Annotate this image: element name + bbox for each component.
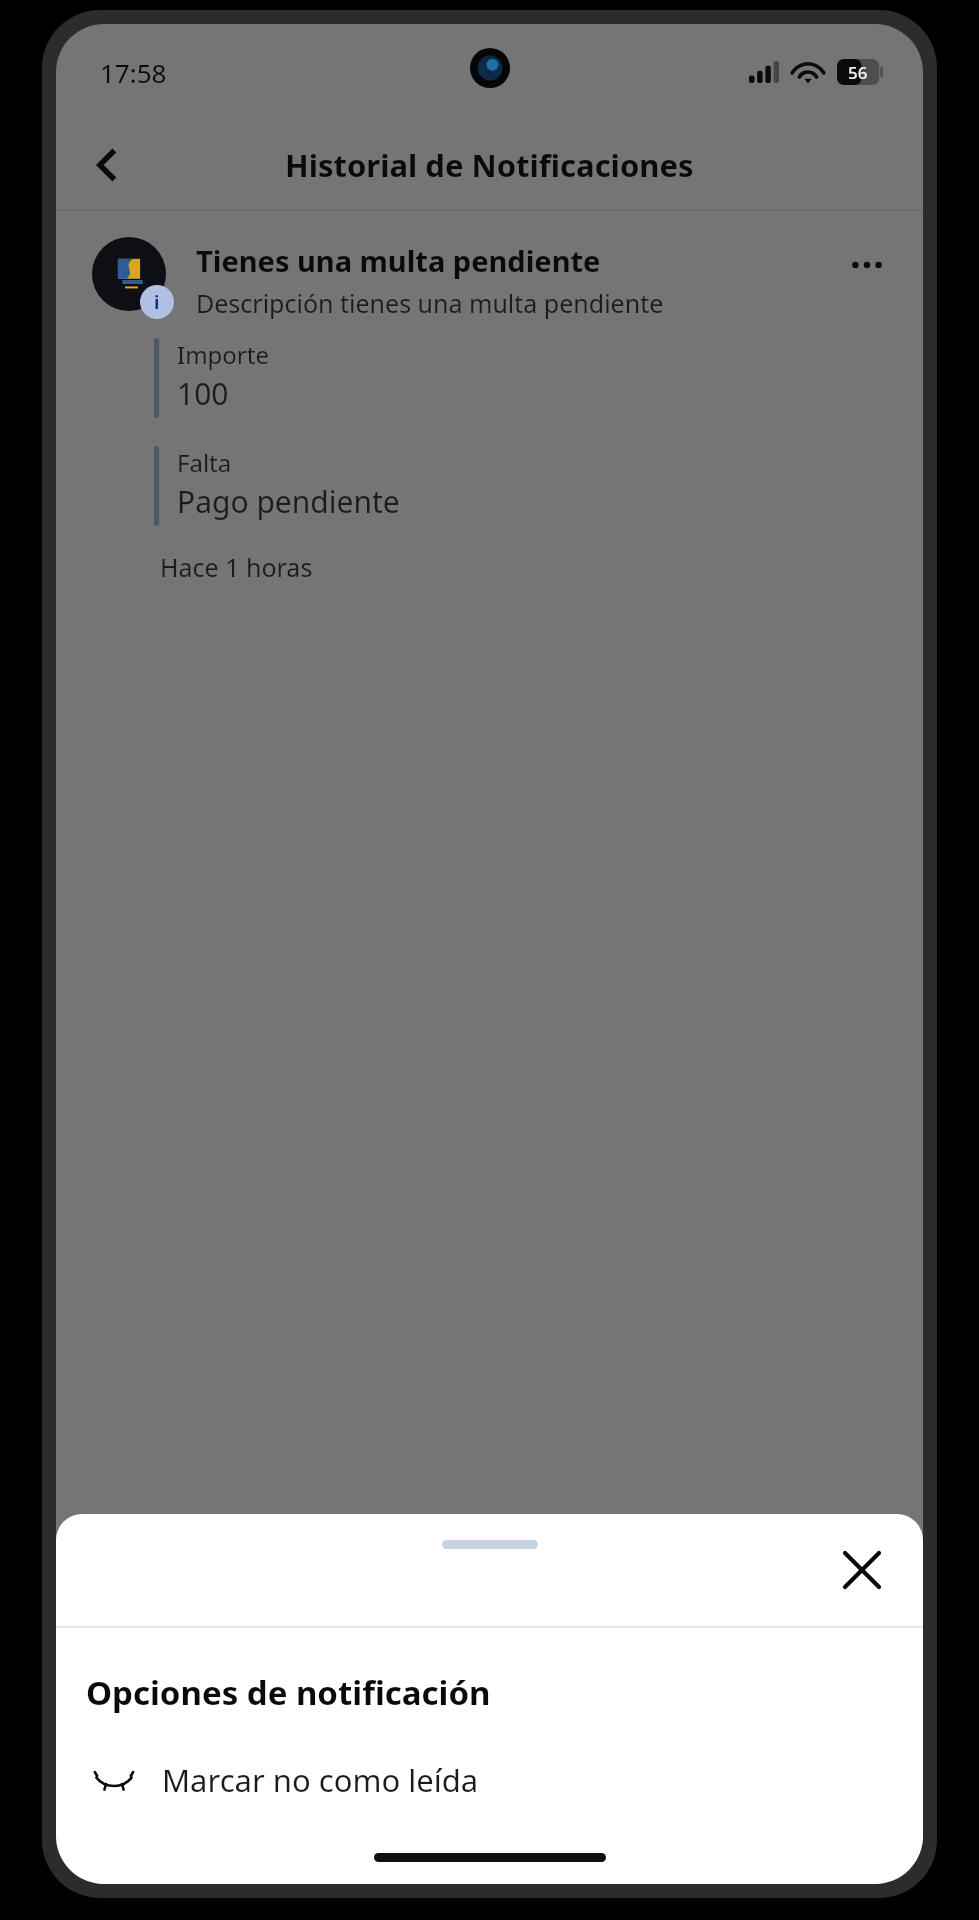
button[interactable]: Marcar no como leída: [56, 1741, 923, 1819]
button[interactable]: Back: [76, 134, 138, 196]
staticText: Descripción tienes una multa pendiente: [196, 286, 664, 320]
button[interactable]: More options: [839, 237, 895, 293]
staticText: 100: [177, 373, 229, 414]
button[interactable]: i: [56, 211, 923, 584]
staticText: Hace 1 horas: [160, 550, 313, 584]
staticText: Marcar no como leída: [162, 1759, 479, 1801]
staticText: Falta: [177, 446, 232, 479]
staticText: Historial de Notificaciones: [285, 144, 694, 186]
staticText: Tienes una multa pendiente: [196, 241, 601, 280]
staticText: 56: [848, 61, 868, 84]
staticText: Pago pendiente: [177, 481, 400, 522]
staticText: Importe: [177, 338, 269, 371]
button[interactable]: Close: [831, 1539, 893, 1601]
staticText: 17:58: [100, 55, 167, 90]
staticText: i: [154, 290, 160, 315]
staticText: Opciones de notificación: [86, 1670, 491, 1715]
